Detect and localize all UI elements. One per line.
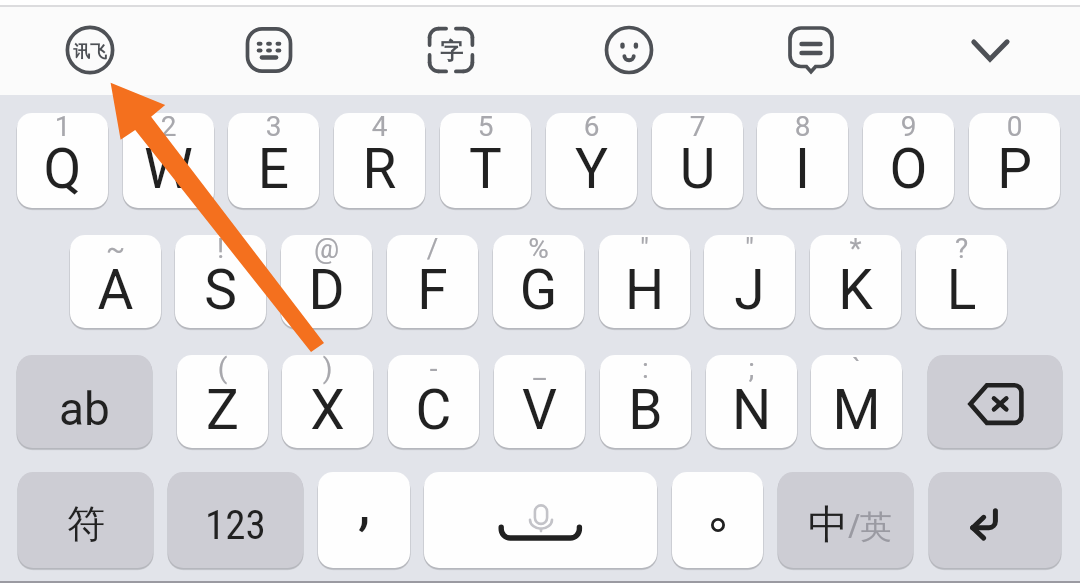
staticText: /: [387, 235, 478, 265]
staticText: R: [334, 137, 425, 201]
button[interactable]: Space: [424, 472, 657, 568]
button[interactable]: 6: [546, 113, 637, 208]
staticText: 7: [652, 113, 743, 143]
staticText: M: [811, 378, 902, 442]
staticText: T: [440, 137, 531, 201]
staticText: 4: [334, 113, 425, 143]
staticText: -: [388, 355, 479, 385]
staticText: B: [600, 378, 691, 442]
staticText: ": [599, 235, 690, 265]
button[interactable]: 9: [863, 113, 954, 208]
button[interactable]: ,: [318, 472, 410, 568]
button[interactable]: -: [388, 355, 479, 448]
button[interactable]: `: [811, 355, 902, 448]
button[interactable]: ~: [70, 235, 161, 328]
button[interactable]: :: [600, 355, 691, 448]
staticText: ;: [706, 355, 797, 385]
staticText: ab: [59, 382, 110, 436]
staticText: 1: [17, 113, 108, 143]
button[interactable]: ": [599, 235, 690, 328]
button[interactable]: ": [704, 235, 795, 328]
staticText: 8: [757, 113, 848, 143]
staticText: :: [600, 355, 691, 385]
staticText: E: [228, 137, 319, 201]
button[interactable]: 中: [778, 472, 913, 568]
staticText: 5: [440, 113, 531, 143]
staticText: /英: [848, 504, 892, 548]
button[interactable]: ?: [916, 235, 1007, 328]
staticText: I: [757, 137, 848, 201]
staticText: 2: [123, 113, 214, 143]
button[interactable]: Emoji: [595, 16, 663, 84]
staticText: *: [810, 235, 901, 265]
button[interactable]: 0: [969, 113, 1060, 208]
staticText: L: [916, 258, 1007, 322]
button[interactable]: Phrases: [777, 15, 845, 83]
staticText: ?: [916, 235, 1007, 265]
staticText: O: [863, 137, 954, 201]
staticText: ~: [70, 235, 161, 265]
staticText: C: [388, 378, 479, 442]
button[interactable]: ): [282, 355, 373, 448]
button[interactable]: *: [810, 235, 901, 328]
button[interactable]: ab: [17, 355, 152, 448]
staticText: W: [123, 137, 214, 201]
staticText: `: [811, 355, 902, 385]
button[interactable]: _: [494, 355, 585, 448]
button[interactable]: ;: [706, 355, 797, 448]
staticText: Q: [17, 137, 108, 201]
button[interactable]: 7: [652, 113, 743, 208]
button[interactable]: 8: [757, 113, 848, 208]
staticText: ": [704, 235, 795, 265]
button[interactable]: Hide keyboard: [956, 16, 1024, 84]
staticText: J: [704, 258, 795, 322]
staticText: H: [599, 258, 690, 322]
staticText: D: [281, 258, 372, 322]
button[interactable]: 1: [17, 113, 108, 208]
button[interactable]: @: [281, 235, 372, 328]
staticText: X: [282, 378, 373, 442]
staticText: Z: [177, 378, 268, 442]
button[interactable]: Enter: [929, 472, 1061, 568]
button[interactable]: /: [387, 235, 478, 328]
staticText: %: [493, 235, 584, 265]
staticText: (: [177, 355, 268, 385]
button[interactable]: Handwriting: [417, 16, 485, 84]
button[interactable]: Keyboard layout: [235, 16, 303, 84]
staticText: 6: [546, 113, 637, 143]
button[interactable]: 符: [18, 472, 153, 568]
staticText: ,: [358, 472, 371, 539]
staticText: @: [281, 235, 372, 265]
button[interactable]: (: [177, 355, 268, 448]
staticText: 中: [808, 499, 848, 549]
button[interactable]: %: [493, 235, 584, 328]
button[interactable]: [672, 472, 763, 568]
button[interactable]: 4: [334, 113, 425, 208]
staticText: 3: [228, 113, 319, 143]
button[interactable]: Input method logo: [56, 16, 124, 84]
staticText: G: [493, 258, 584, 322]
staticText: 讯飞: [73, 41, 107, 62]
staticText: K: [810, 258, 901, 322]
button[interactable]: 3: [228, 113, 319, 208]
button[interactable]: 123: [168, 472, 303, 568]
staticText: 字: [440, 37, 463, 66]
staticText: Y: [546, 137, 637, 201]
staticText: 符: [67, 500, 105, 548]
staticText: A: [70, 258, 161, 322]
staticText: 9: [863, 113, 954, 143]
staticText: N: [706, 378, 797, 442]
button[interactable]: 2: [123, 113, 214, 208]
staticText: 123: [205, 501, 266, 549]
staticText: ): [282, 355, 373, 385]
staticText: S: [175, 258, 266, 322]
button[interactable]: !: [175, 235, 266, 328]
button[interactable]: 5: [440, 113, 531, 208]
staticText: V: [494, 378, 585, 442]
button[interactable]: Backspace: [928, 355, 1062, 448]
staticText: 0: [969, 113, 1060, 143]
staticText: F: [387, 258, 478, 322]
staticText: U: [652, 137, 743, 201]
staticText: P: [969, 137, 1060, 201]
staticText: !: [175, 235, 266, 265]
